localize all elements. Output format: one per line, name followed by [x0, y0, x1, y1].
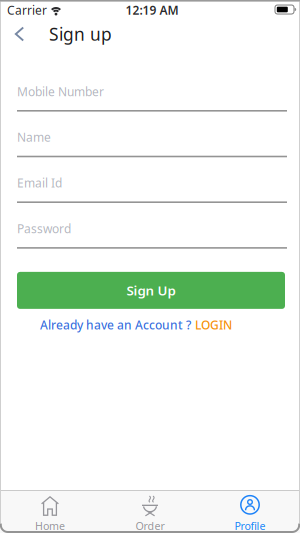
button[interactable]: Sign Up [0, 272, 300, 309]
button[interactable]: Email Id [17, 176, 287, 203]
button[interactable]: Name [17, 131, 287, 157]
staticText: Password [17, 221, 71, 236]
button[interactable]: LOGIN [195, 317, 232, 333]
staticText: Email Id [17, 175, 62, 191]
staticText: Order [135, 519, 164, 533]
staticText: Carrier [7, 2, 47, 18]
staticText: Sign Up [126, 281, 175, 299]
staticText: Sign up [49, 22, 112, 45]
button[interactable]: Home [0, 491, 100, 533]
staticText: LOGIN [195, 317, 232, 333]
button[interactable]: Back [0, 20, 32, 48]
button[interactable]: Profile [200, 491, 300, 533]
button[interactable]: Password [17, 222, 287, 249]
staticText: Profile [234, 519, 265, 533]
button[interactable]: Order [100, 491, 200, 533]
staticText: Mobile Number [17, 83, 104, 99]
staticText: Already have an Account ? [40, 317, 191, 333]
staticText: Name [17, 129, 51, 145]
button[interactable]: Mobile Number [17, 85, 287, 112]
staticText: Home [35, 519, 65, 533]
staticText: 12:19 AM [125, 2, 178, 18]
